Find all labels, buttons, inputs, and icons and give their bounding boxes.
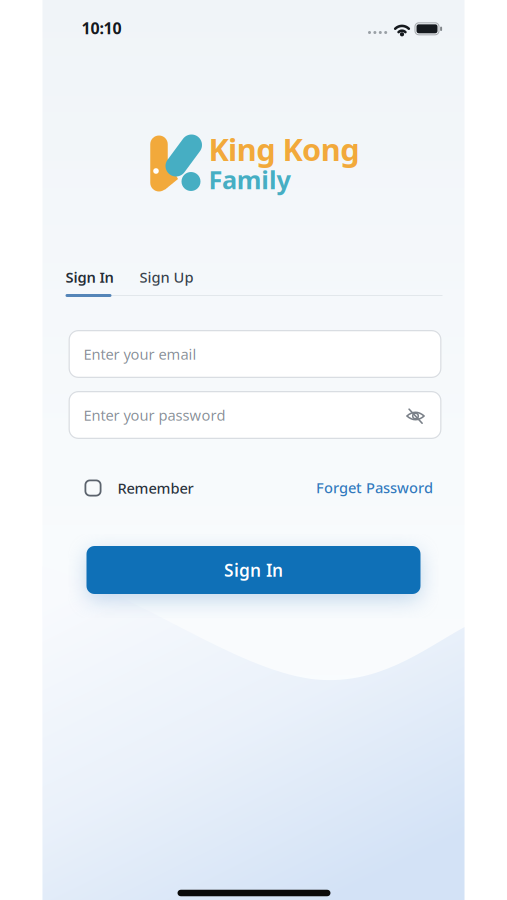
staticText: Enter your email	[83, 344, 196, 364]
staticText: Remember	[117, 478, 193, 498]
staticText: Sign In	[224, 558, 283, 581]
staticText: Sign Up	[139, 267, 193, 287]
staticText: 10:10	[81, 17, 121, 39]
staticText: Enter your password	[83, 405, 225, 425]
button[interactable]: Remember	[83, 471, 237, 505]
button[interactable]: Forget Password	[316, 478, 433, 497]
staticText: King Kong	[208, 129, 359, 169]
button[interactable]: Sign In	[86, 546, 420, 594]
button[interactable]: Sign Up	[128, 260, 204, 294]
staticText: Family	[208, 163, 290, 196]
staticText: Forget Password	[316, 478, 433, 497]
button[interactable]: Sign In	[51, 260, 127, 294]
button[interactable]: Show password	[402, 403, 428, 429]
staticText: Sign In	[65, 267, 113, 287]
